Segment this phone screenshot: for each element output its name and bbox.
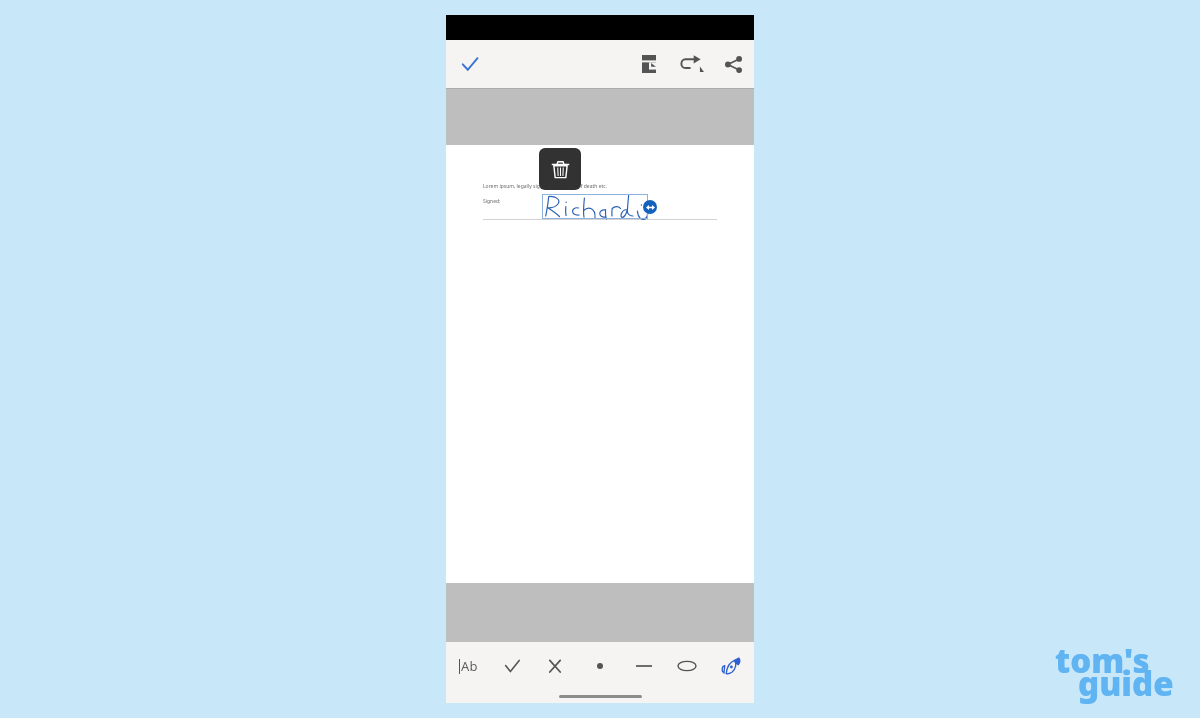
button[interactable]: Dot [582,648,618,684]
button[interactable]: Done [452,46,488,82]
button[interactable]: Page layout [631,46,667,82]
button[interactable]: Line [626,648,662,684]
button[interactable]: Resize signature [643,200,657,214]
staticText: tom's [1055,638,1150,683]
staticText: Lorem ipsum, legally signed declaration … [483,183,608,190]
button[interactable]: Redo [674,46,710,82]
button[interactable]: Signature [713,648,749,684]
staticText: Ab [461,657,478,675]
button[interactable]: Text [450,648,486,684]
staticText: guide [1078,661,1174,706]
button[interactable]: Check [494,648,530,684]
button[interactable]: Share [715,46,751,82]
button[interactable]: Delete [539,148,581,190]
button[interactable]: Cross [537,648,573,684]
staticText: Signed: [483,198,501,205]
button[interactable]: Ellipse [669,648,705,684]
